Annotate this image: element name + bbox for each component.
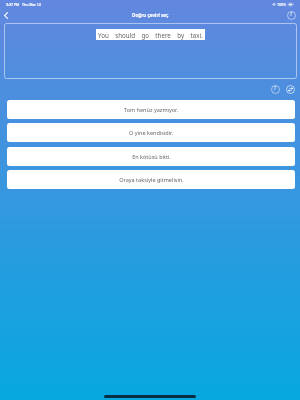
button[interactable]: You should go there by taxi. (98, 29, 203, 40)
button[interactable]: En kötüsü bitti. (7, 147, 295, 166)
button[interactable]: Help (286, 10, 297, 21)
button[interactable]: O yine kendisidir. (7, 123, 295, 142)
staticText: ? (290, 11, 293, 18)
staticText: Doğru çeviri seç (132, 12, 169, 18)
button[interactable]: Back (0, 10, 11, 21)
staticText: You should go there by taxi. (98, 31, 203, 39)
staticText: Thu Mar 14 (22, 2, 41, 7)
staticText: 100% (277, 2, 286, 7)
staticText: En kötüsü bitti. (132, 153, 171, 160)
staticText: ? (274, 85, 277, 92)
button[interactable]: Oraya taksiyle gitmelisin. (7, 170, 295, 189)
button[interactable]: Hint (270, 84, 281, 95)
button[interactable]: Shuffle (285, 84, 296, 95)
staticText: Oraya taksiyle gitmelisin. (119, 176, 184, 183)
staticText: O yine kendisidir. (129, 129, 173, 136)
staticText: 3:37 PM (6, 2, 20, 7)
staticText: Tom henüz yazmıyor. (124, 106, 178, 113)
button[interactable]: Tom henüz yazmıyor. (7, 100, 295, 119)
